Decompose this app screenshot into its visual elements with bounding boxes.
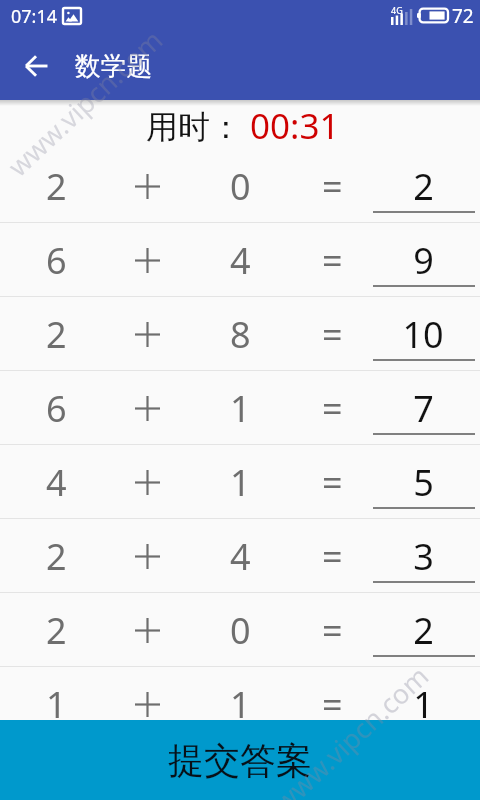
staticText: www.vipcn.com xyxy=(0,21,170,184)
staticText: 2 xyxy=(46,606,67,655)
staticText: 1 xyxy=(230,680,251,729)
staticText: 0 xyxy=(230,162,251,211)
staticText: 1 xyxy=(46,680,67,729)
staticText: 6 xyxy=(46,384,67,433)
staticText: = xyxy=(322,384,343,433)
button[interactable]: 6 xyxy=(0,223,480,297)
staticText: 2 xyxy=(413,162,434,211)
button[interactable]: 2 xyxy=(0,519,480,593)
staticText: = xyxy=(322,458,343,507)
staticText: 07:14 xyxy=(11,4,58,29)
button[interactable]: 6 xyxy=(0,371,480,445)
staticText: 用时： xyxy=(146,107,242,147)
staticText: www.vipcn.com xyxy=(265,657,436,800)
button[interactable]: 提交答案 xyxy=(0,720,480,800)
staticText: 4 xyxy=(230,532,251,581)
staticText: 2 xyxy=(46,310,67,359)
staticText: = xyxy=(322,532,343,581)
staticText: 00:31 xyxy=(250,102,340,150)
button[interactable]: 2 xyxy=(0,149,480,223)
staticText: 0 xyxy=(230,606,251,655)
staticText: = xyxy=(322,310,343,359)
staticText: 5 xyxy=(413,458,434,507)
staticText: 7 xyxy=(413,384,434,433)
button[interactable]: 2 xyxy=(0,593,480,667)
staticText: = xyxy=(322,606,343,655)
staticText: 2 xyxy=(46,532,67,581)
staticText: 1 xyxy=(413,680,434,729)
staticText: 1 xyxy=(230,384,251,433)
staticText: 2 xyxy=(46,162,67,211)
staticText: 提交答案 xyxy=(168,738,312,783)
button[interactable]: Back xyxy=(8,38,64,94)
staticText: 3 xyxy=(413,532,434,581)
button[interactable]: 1 xyxy=(0,667,480,741)
staticText: 6 xyxy=(46,236,67,285)
staticText: 数学题 xyxy=(75,50,153,83)
button[interactable]: 4 xyxy=(0,445,480,519)
staticText: 9 xyxy=(413,236,434,285)
staticText: = xyxy=(322,162,343,211)
staticText: 1 xyxy=(230,458,251,507)
staticText: 4 xyxy=(46,458,67,507)
staticText: 4 xyxy=(230,236,251,285)
staticText: 2 xyxy=(413,606,434,655)
staticText: 8 xyxy=(230,310,251,359)
button[interactable]: 2 xyxy=(0,297,480,371)
staticText: = xyxy=(322,680,343,729)
staticText: 72 xyxy=(452,3,474,29)
staticText: 4G xyxy=(391,4,403,16)
staticText: 10 xyxy=(402,310,444,359)
staticText: = xyxy=(322,236,343,285)
